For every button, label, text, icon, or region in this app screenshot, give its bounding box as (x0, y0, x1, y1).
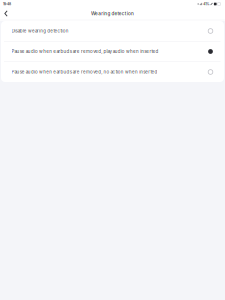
staticText: 19:48 (3, 2, 11, 6)
staticText: Wearing detection (91, 11, 134, 16)
button[interactable]: Disable wearing detection (1, 21, 224, 41)
button[interactable]: Back (0, 8, 12, 19)
staticText: 41% (203, 2, 209, 6)
staticText: Pause audio when earbuds are removed, no… (11, 69, 157, 75)
button[interactable]: Pause audio when earbuds are removed, no… (1, 62, 224, 82)
staticText: Disable wearing detection (11, 28, 69, 34)
button[interactable]: Pause audio when earbuds are removed, pl… (1, 41, 224, 61)
staticText: Pause audio when earbuds are removed, pl… (11, 49, 158, 54)
